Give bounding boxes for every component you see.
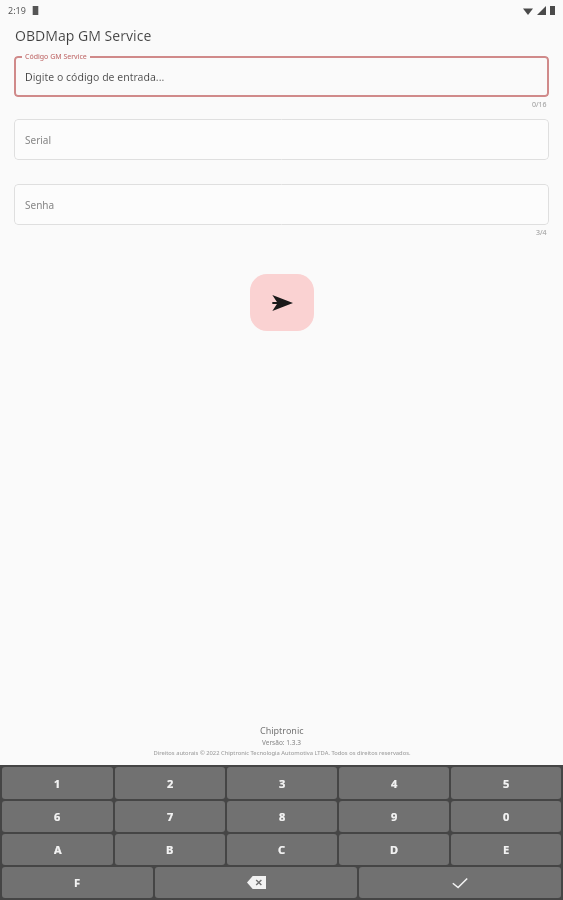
staticText: 3/4 bbox=[536, 228, 547, 238]
staticText: 5 bbox=[503, 776, 510, 791]
button[interactable]: 2 bbox=[115, 767, 225, 799]
staticText: Versão: 1.3.3 bbox=[262, 738, 301, 747]
staticText: 0 bbox=[503, 809, 510, 824]
button[interactable]: Confirmar bbox=[359, 867, 561, 898]
button[interactable]: Backspace bbox=[155, 867, 357, 898]
staticText: C bbox=[278, 842, 286, 857]
staticText: Digite o código de entrada... bbox=[25, 70, 165, 84]
button[interactable]: B bbox=[115, 834, 225, 865]
staticText: A bbox=[54, 842, 62, 857]
button[interactable]: D bbox=[339, 834, 449, 865]
staticText: Direitos autorais © 2022 Chiptronic Tecn… bbox=[153, 749, 411, 757]
button[interactable]: 1 bbox=[2, 767, 113, 799]
staticText: D bbox=[390, 842, 399, 857]
staticText: 7 bbox=[167, 809, 174, 824]
button[interactable]: 9 bbox=[339, 801, 449, 832]
staticText: Senha bbox=[25, 198, 55, 212]
staticText: 9 bbox=[391, 809, 398, 824]
staticText: Código GM Service bbox=[25, 52, 87, 62]
staticText: OBDMap GM Service bbox=[15, 26, 152, 45]
button[interactable]: F bbox=[2, 867, 153, 898]
button[interactable]: 6 bbox=[2, 801, 113, 832]
staticText: 3 bbox=[279, 776, 286, 791]
staticText: B bbox=[166, 842, 174, 857]
button[interactable]: 5 bbox=[451, 767, 561, 799]
button[interactable]: 8 bbox=[227, 801, 337, 832]
button[interactable]: 0 bbox=[451, 801, 561, 832]
staticText: Serial bbox=[25, 133, 52, 147]
button[interactable]: 7 bbox=[115, 801, 225, 832]
button[interactable]: A bbox=[2, 834, 113, 865]
staticText: F bbox=[74, 875, 81, 890]
staticText: 2 bbox=[167, 776, 174, 791]
staticText: Chiptronic bbox=[260, 724, 304, 736]
staticText: 0/16 bbox=[532, 100, 547, 110]
staticText: E bbox=[503, 842, 510, 857]
staticText: 8 bbox=[279, 809, 286, 824]
staticText: 4 bbox=[391, 776, 398, 791]
staticText: 6 bbox=[54, 809, 61, 824]
button[interactable]: Senha bbox=[14, 184, 549, 225]
button[interactable]: Enviar bbox=[250, 274, 314, 331]
button[interactable]: Serial bbox=[14, 119, 549, 160]
button[interactable]: 3 bbox=[227, 767, 337, 799]
staticText: 2:19 bbox=[8, 4, 26, 16]
button[interactable]: Digite o código de entrada... bbox=[14, 56, 549, 97]
button[interactable]: E bbox=[451, 834, 561, 865]
button[interactable]: C bbox=[227, 834, 337, 865]
staticText: 1 bbox=[54, 776, 61, 791]
button[interactable]: 4 bbox=[339, 767, 449, 799]
